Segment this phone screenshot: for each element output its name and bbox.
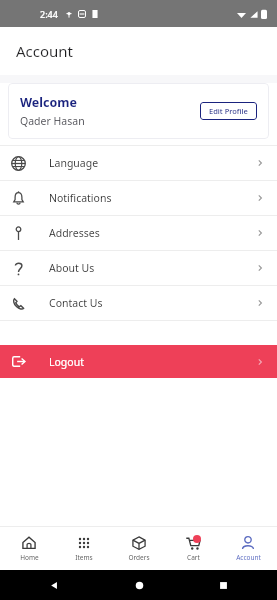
button[interactable]: Logout [0,345,277,378]
staticText: Contact Us [49,296,103,310]
staticText: Account [16,41,74,61]
button[interactable]: Contact Us [0,286,277,320]
staticText: About Us [49,261,95,275]
button[interactable]: Home [109,580,169,591]
staticText: Addresses [49,226,100,240]
staticText: Edit Profile [209,106,248,116]
button[interactable]: Language [0,146,277,180]
staticText: Logout [49,355,84,369]
button[interactable]: Home [3,532,55,565]
staticText: Items [75,553,93,562]
button[interactable]: Recents [193,580,253,591]
staticText: Cart [187,553,200,562]
button[interactable]: Items [58,532,110,565]
button[interactable]: Welcome [8,83,269,139]
button[interactable]: Orders [113,532,165,565]
button[interactable]: Edit Profile [200,102,257,120]
staticText: Notifications [49,191,112,205]
button[interactable]: Notifications [0,181,277,215]
button[interactable]: Account [222,532,274,565]
staticText: Qader Hasan [20,114,85,128]
staticText: Home [20,553,39,562]
staticText: 2:44 [40,8,58,20]
staticText: Welcome [20,94,77,111]
button[interactable]: Cart [167,532,219,565]
button[interactable]: Addresses [0,216,277,250]
button[interactable]: About Us [0,251,277,285]
button[interactable]: Back [24,580,84,591]
staticText: Language [49,156,99,170]
staticText: Orders [128,553,150,562]
staticText: Account [236,553,261,562]
